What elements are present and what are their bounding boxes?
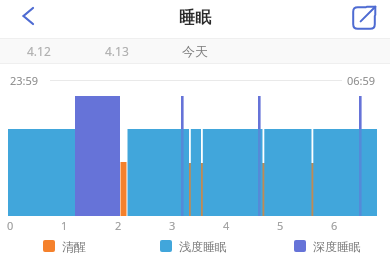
staticText: 3: [169, 218, 176, 233]
button[interactable]: 今天: [156, 38, 234, 64]
staticText: 06:59: [347, 73, 376, 88]
staticText: 深度睡眠: [313, 239, 361, 254]
button[interactable]: 4.12: [0, 38, 78, 64]
staticText: 浅度睡眠: [179, 239, 227, 254]
staticText: 4.13: [105, 43, 129, 59]
staticText: 5: [277, 218, 284, 233]
button[interactable]: [346, 1, 382, 35]
staticText: 2: [115, 218, 122, 233]
button[interactable]: 清醒: [43, 238, 86, 254]
staticText: 4.12: [27, 43, 51, 59]
staticText: 4: [223, 218, 230, 233]
staticText: 0: [7, 218, 14, 233]
button[interactable]: 4.13: [78, 38, 156, 64]
button[interactable]: 浅度睡眠: [160, 238, 227, 254]
staticText: 6: [331, 218, 338, 233]
staticText: 睡眠: [179, 8, 211, 28]
staticText: 1: [61, 218, 68, 233]
staticText: 清醒: [62, 239, 86, 254]
button[interactable]: 深度睡眠: [294, 238, 361, 254]
staticText: 今天: [182, 43, 208, 59]
button[interactable]: [12, 2, 43, 30]
staticText: 23:59: [10, 73, 39, 88]
